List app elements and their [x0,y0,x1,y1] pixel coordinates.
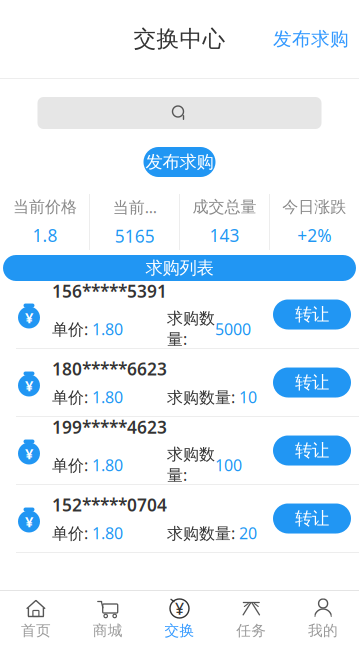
button[interactable]: 商城 [72,591,144,647]
button[interactable]: 转让 [273,299,351,329]
staticText: 求购数量: [167,386,239,408]
staticText: 5165 [115,225,155,248]
staticText: 1.80 [92,522,123,544]
staticText: 交换中心 [133,25,225,53]
staticText: 1.80 [92,386,123,408]
staticText: 发布求购 [145,151,213,173]
button[interactable]: 发布求购 [143,147,215,177]
staticText: 成交总量 [192,197,256,217]
button[interactable]: 任务 [215,591,287,647]
button[interactable]: 搜索 [37,97,321,129]
staticText: 单价: [52,454,92,476]
button[interactable]: 转让 [273,367,351,397]
staticText: 当前价格 [13,197,77,217]
button[interactable]: 求购列表 [3,255,356,281]
staticText: +2% [297,224,331,247]
button[interactable]: 转让 [273,503,351,533]
staticText: ¥ [25,512,33,531]
staticText: 求购列表 [145,257,213,279]
staticText: 1.80 [92,318,123,340]
staticText: 首页 [21,621,51,639]
staticText: ¥ [25,376,33,395]
staticText: 转让 [295,440,329,461]
staticText: 求购数量: [167,445,215,485]
staticText: 单价: [52,522,92,544]
staticText: 单价: [52,386,92,408]
staticText: 转让 [295,304,329,325]
staticText: 20 [239,522,257,544]
button[interactable]: ¥ [144,591,215,647]
staticText: 发布求购 [273,27,349,50]
staticText: 求购数量: [167,309,215,349]
staticText: 1.80 [92,454,123,476]
staticText: 1.8 [32,224,57,247]
staticText: 5000 [215,318,251,340]
staticText: 180*****6623 [52,357,167,380]
staticText: 143 [209,224,239,247]
staticText: 我的 [308,621,338,639]
staticText: 求购数量: [167,522,239,544]
staticText: ¥ [175,598,184,619]
staticText: 交换 [164,621,194,639]
staticText: 152*****0704 [52,493,167,516]
staticText: 今日涨跌 [282,197,346,217]
staticText: 156*****5391 [52,279,167,302]
button[interactable]: 我的 [287,591,359,647]
staticText: 单价: [52,318,92,340]
button[interactable]: 发布求购 [273,21,359,56]
staticText: 100 [215,454,242,476]
staticText: 转让 [295,372,329,393]
staticText: 10 [239,386,257,408]
staticText: 任务 [236,621,266,639]
button[interactable]: 转让 [273,435,351,465]
staticText: 转让 [295,508,329,529]
button[interactable]: 首页 [0,591,72,647]
staticText: 199*****4623 [52,415,167,438]
staticText: 当前... [113,196,157,218]
staticText: 商城 [93,621,123,639]
staticText: ¥ [25,308,33,327]
staticText: ¥ [25,444,33,463]
